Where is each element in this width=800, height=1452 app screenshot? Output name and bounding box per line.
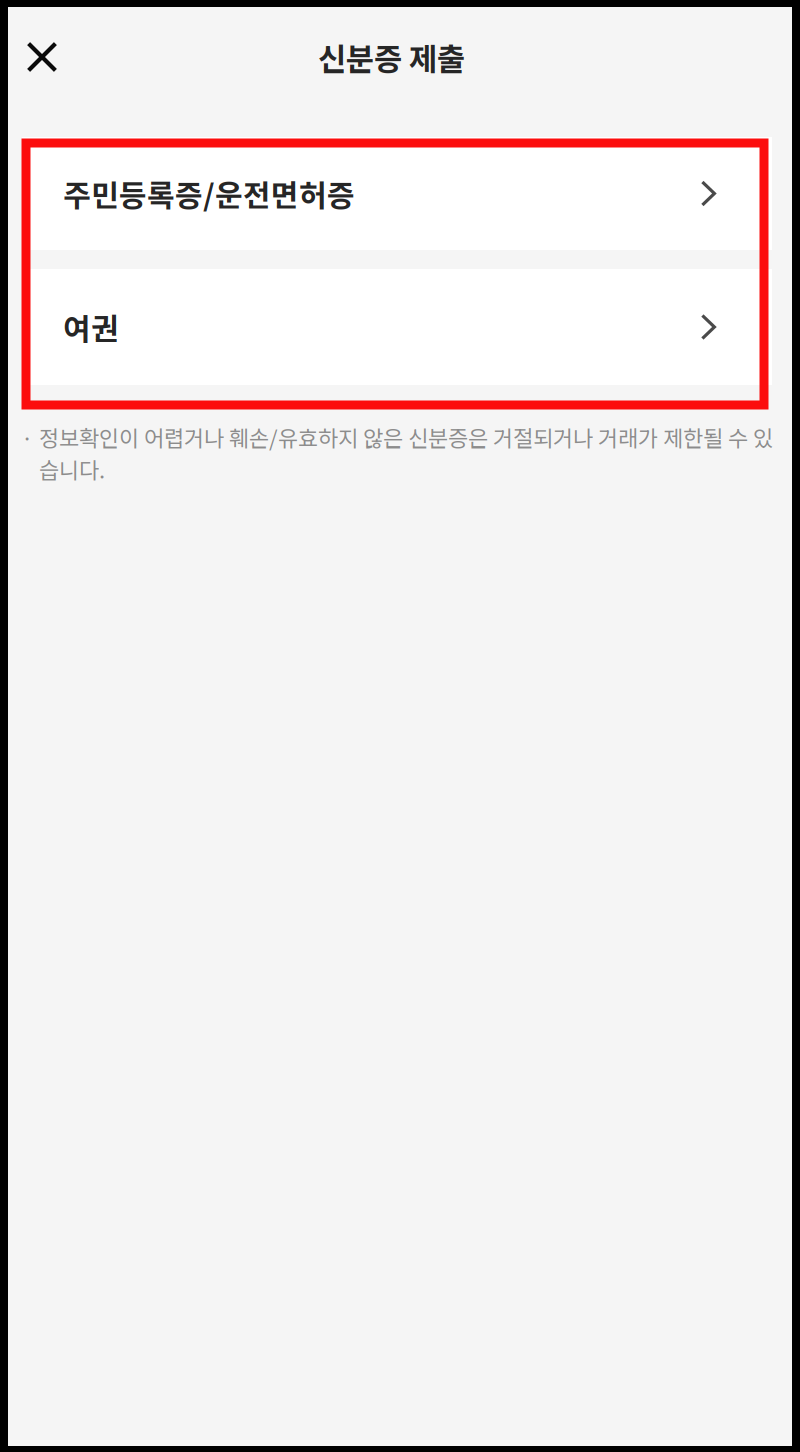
staticText: 정보확인이 어렵거나 훼손/유효하지 않은 신분증은 거절되거나 거래가 제한될… <box>39 421 773 485</box>
staticText: 주민등록증/운전면허증 <box>63 172 355 215</box>
button[interactable]: Close <box>16 31 68 83</box>
staticText: 신분증 제출 <box>318 35 465 79</box>
button[interactable]: 주민등록증/운전면허증 <box>22 137 772 250</box>
staticText: · <box>21 421 33 453</box>
button[interactable]: 여권 <box>22 269 772 385</box>
staticText: 여권 <box>63 305 119 349</box>
